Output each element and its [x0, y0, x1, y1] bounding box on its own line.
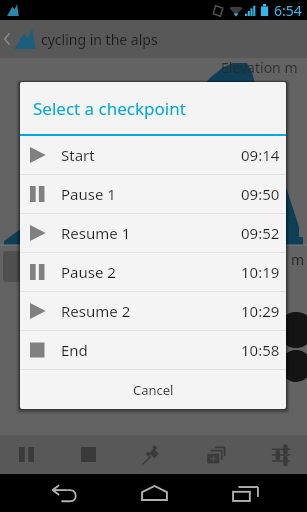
staticText: Resume 1: [61, 223, 131, 243]
staticText: 10:19: [241, 262, 280, 282]
button[interactable]: Resume 2: [20, 292, 286, 330]
staticText: Cancel: [133, 381, 174, 399]
button[interactable]: Pause: [0, 435, 57, 474]
staticText: Select a checkpoint: [33, 97, 186, 120]
button[interactable]: Resume 1: [20, 214, 286, 252]
staticText: Pause 1: [61, 184, 116, 204]
staticText: 09:14: [241, 145, 280, 165]
button[interactable]: Pause 2: [20, 253, 286, 291]
button[interactable]: Start: [20, 136, 286, 174]
button[interactable]: Pause 1: [20, 175, 286, 213]
button[interactable]: Settings: [250, 435, 307, 474]
staticText: 09:52: [241, 223, 280, 243]
button[interactable]: cycling in the alps: [0, 20, 307, 58]
staticText: Resume 2: [61, 301, 131, 321]
button[interactable]: Cancel: [20, 370, 286, 409]
staticText: 10:29: [241, 301, 280, 321]
staticText: Pause 2: [61, 262, 116, 282]
staticText: End: [61, 340, 88, 360]
button[interactable]: End: [20, 331, 286, 369]
button[interactable]: Stop: [57, 435, 119, 474]
staticText: Elevation m: [221, 58, 298, 77]
staticText: 09:50: [241, 184, 280, 204]
button[interactable]: Home: [109, 474, 199, 512]
button[interactable]: Add waypoint: [121, 435, 183, 474]
staticText: Start: [61, 145, 95, 165]
staticText: cycling in the alps: [41, 30, 158, 49]
staticText: m: [291, 250, 305, 269]
button[interactable]: Recents: [200, 474, 290, 512]
button[interactable]: Back: [19, 474, 109, 512]
button[interactable]: Add layer: [185, 435, 247, 474]
staticText: 10:58: [241, 340, 280, 360]
staticText: 6:54: [274, 1, 302, 20]
